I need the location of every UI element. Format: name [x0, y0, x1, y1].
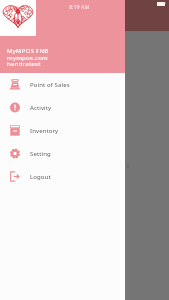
staticText: Setting: [30, 150, 51, 158]
staticText: Point of Sales: [30, 81, 70, 89]
button[interactable]: Activity: [0, 96, 125, 119]
staticText: 8:19 AM: [69, 3, 90, 10]
staticText: hendratest: [7, 60, 41, 68]
button[interactable]: Point of Sales: [0, 73, 125, 96]
staticText: Inventory: [30, 127, 59, 135]
button[interactable]: Setting: [0, 142, 125, 165]
staticText: mympos.com: [7, 54, 49, 62]
button[interactable]: Inventory: [0, 119, 125, 142]
staticText: Logout: [30, 173, 51, 181]
button[interactable]: Logout: [0, 165, 125, 188]
staticText: MyMPOS FNB: [7, 47, 49, 55]
staticText: 0.0: [122, 162, 130, 169]
staticText: Activity: [30, 104, 52, 112]
